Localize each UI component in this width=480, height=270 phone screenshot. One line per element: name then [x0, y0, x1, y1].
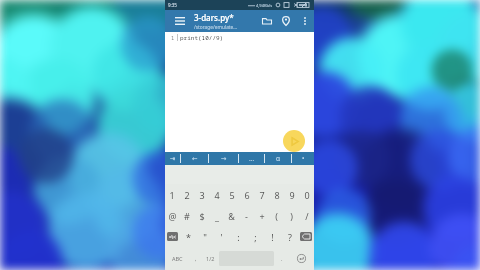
button[interactable]: 1: [165, 184, 179, 205]
button[interactable]: _: [209, 205, 224, 226]
button[interactable]: ⇥: [165, 152, 180, 165]
button[interactable]: =\<: [167, 232, 178, 241]
button[interactable]: ": [196, 226, 213, 247]
button[interactable]: :: [230, 226, 247, 247]
staticText: 9: [289, 189, 295, 201]
button[interactable]: Run: [283, 130, 305, 152]
button[interactable]: Backspace: [300, 232, 312, 241]
staticText: #: [184, 210, 190, 222]
staticText: 3: [199, 189, 205, 201]
staticText: 3-dars.py*: [194, 12, 234, 23]
button[interactable]: …: [239, 152, 264, 165]
staticText: /storage/emulate...: [194, 24, 238, 31]
staticText: !: [271, 231, 274, 243]
staticText: -: [245, 210, 248, 222]
staticText: ): [290, 210, 293, 222]
staticText: &: [228, 210, 235, 222]
staticText: 7: [259, 189, 265, 201]
button[interactable]: &: [224, 205, 239, 226]
staticText: print(10//9): [180, 34, 224, 42]
staticText: 0: [304, 189, 310, 201]
button[interactable]: ,: [190, 247, 202, 270]
staticText: 1: [169, 189, 175, 201]
staticText: 8: [274, 189, 280, 201]
button[interactable]: 5: [224, 184, 239, 205]
staticText: 1/2: [206, 255, 215, 262]
button[interactable]: -: [239, 205, 254, 226]
staticText: α: [276, 154, 281, 163]
button[interactable]: !: [264, 226, 281, 247]
button[interactable]: 6: [239, 184, 254, 205]
button[interactable]: ): [284, 205, 299, 226]
staticText: ABC: [172, 255, 183, 262]
button[interactable]: Navigation menu: [165, 10, 194, 32]
button[interactable]: →: [209, 152, 238, 165]
staticText: …: [249, 154, 255, 163]
staticText: ←: [192, 155, 198, 163]
button[interactable]: 1/2: [202, 247, 219, 270]
button[interactable]: (: [269, 205, 284, 226]
button[interactable]: 4: [209, 184, 224, 205]
staticText: (: [275, 210, 278, 222]
button[interactable]: •: [292, 152, 314, 165]
staticText: +: [259, 210, 265, 222]
staticText: ,: [195, 255, 197, 262]
button[interactable]: 8: [269, 184, 284, 205]
staticText: @: [168, 210, 177, 222]
staticText: •: [302, 154, 305, 163]
button[interactable]: 0: [299, 184, 314, 205]
button[interactable]: 2: [179, 184, 194, 205]
staticText: /: [305, 210, 309, 222]
button[interactable]: 9: [284, 184, 299, 205]
button[interactable]: Enter: [289, 247, 314, 270]
button[interactable]: ': [213, 226, 230, 247]
button[interactable]: /: [299, 205, 314, 226]
button[interactable]: 7: [254, 184, 269, 205]
button[interactable]: 3: [194, 184, 209, 205]
staticText: :: [237, 231, 240, 243]
staticText: 4,94Kb/s: [256, 3, 273, 8]
button[interactable]: @: [165, 205, 179, 226]
staticText: 5: [229, 189, 235, 201]
staticText: 1: [171, 34, 175, 41]
staticText: 2: [184, 189, 190, 201]
staticText: 6: [244, 189, 250, 201]
staticText: ;: [254, 231, 257, 243]
button[interactable]: More options: [295, 10, 314, 32]
staticText: ?: [288, 231, 292, 243]
staticText: ": [203, 231, 207, 243]
staticText: $: [199, 210, 205, 222]
button[interactable]: Find: [276, 10, 295, 32]
button[interactable]: ?: [281, 226, 298, 247]
button[interactable]: ABC: [165, 247, 190, 270]
button[interactable]: Open folder: [257, 10, 276, 32]
staticText: 4: [214, 189, 220, 201]
button[interactable]: #: [179, 205, 194, 226]
staticText: ⇥: [170, 155, 176, 163]
button[interactable]: +: [254, 205, 269, 226]
staticText: .: [281, 255, 283, 262]
button[interactable]: ;: [247, 226, 264, 247]
button[interactable]: *: [180, 226, 196, 247]
button[interactable]: $: [194, 205, 209, 226]
button[interactable]: α: [265, 152, 291, 165]
staticText: ': [220, 231, 223, 243]
staticText: →: [221, 155, 227, 163]
staticText: _: [215, 210, 219, 222]
button[interactable]: ←: [181, 152, 208, 165]
staticText: 9:35: [168, 2, 177, 8]
staticText: *: [186, 231, 191, 243]
staticText: =\<: [169, 234, 176, 240]
